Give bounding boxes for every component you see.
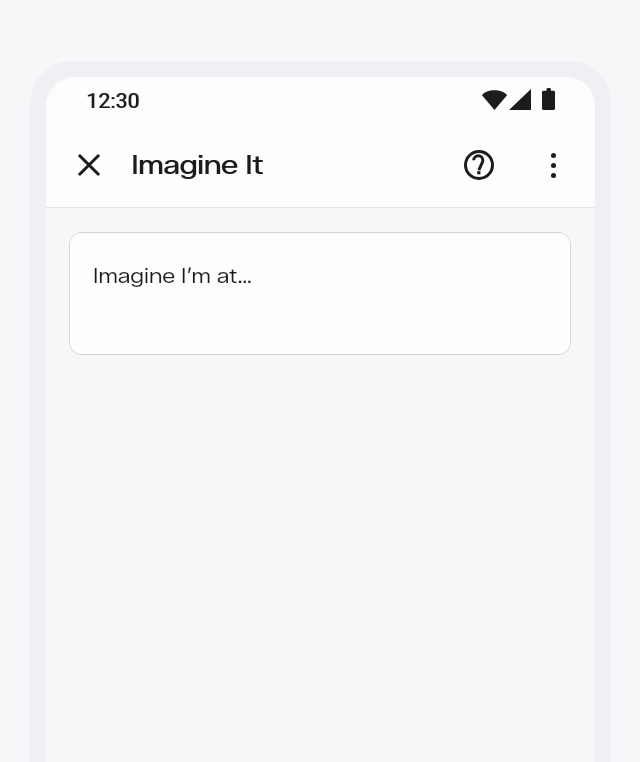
staticText: Imagine It <box>131 148 263 181</box>
button[interactable]: More options <box>529 141 577 189</box>
button[interactable]: Help <box>455 141 503 189</box>
button[interactable]: Imagine I’m at… <box>69 232 571 355</box>
staticText: Imagine I’m at… <box>93 263 253 288</box>
staticText: 12:30 <box>86 89 140 114</box>
staticText: Imagine It <box>132 148 264 181</box>
button[interactable]: Close <box>65 141 113 189</box>
staticText: 12:30 <box>87 89 141 114</box>
